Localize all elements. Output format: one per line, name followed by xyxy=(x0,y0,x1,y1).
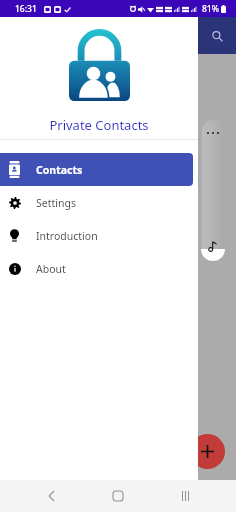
button[interactable]: Back xyxy=(35,480,67,512)
button[interactable]: Search xyxy=(206,25,228,47)
button[interactable]: About xyxy=(0,252,193,285)
button[interactable]: Settings xyxy=(0,186,193,219)
button[interactable]: Introduction xyxy=(0,219,193,252)
staticText: 81% xyxy=(202,3,219,15)
button[interactable]: Recent apps xyxy=(169,480,201,512)
button[interactable]: Home xyxy=(102,480,134,512)
button[interactable]: Contacts xyxy=(0,153,193,186)
staticText: Settings xyxy=(36,196,76,210)
staticText: Contacts xyxy=(36,163,83,177)
staticText: 16:31 xyxy=(15,3,37,15)
staticText: Private Contacts xyxy=(49,116,149,134)
staticText: Introduction xyxy=(36,229,98,243)
button[interactable]: Add contact xyxy=(190,434,225,469)
staticText: About xyxy=(36,262,66,276)
